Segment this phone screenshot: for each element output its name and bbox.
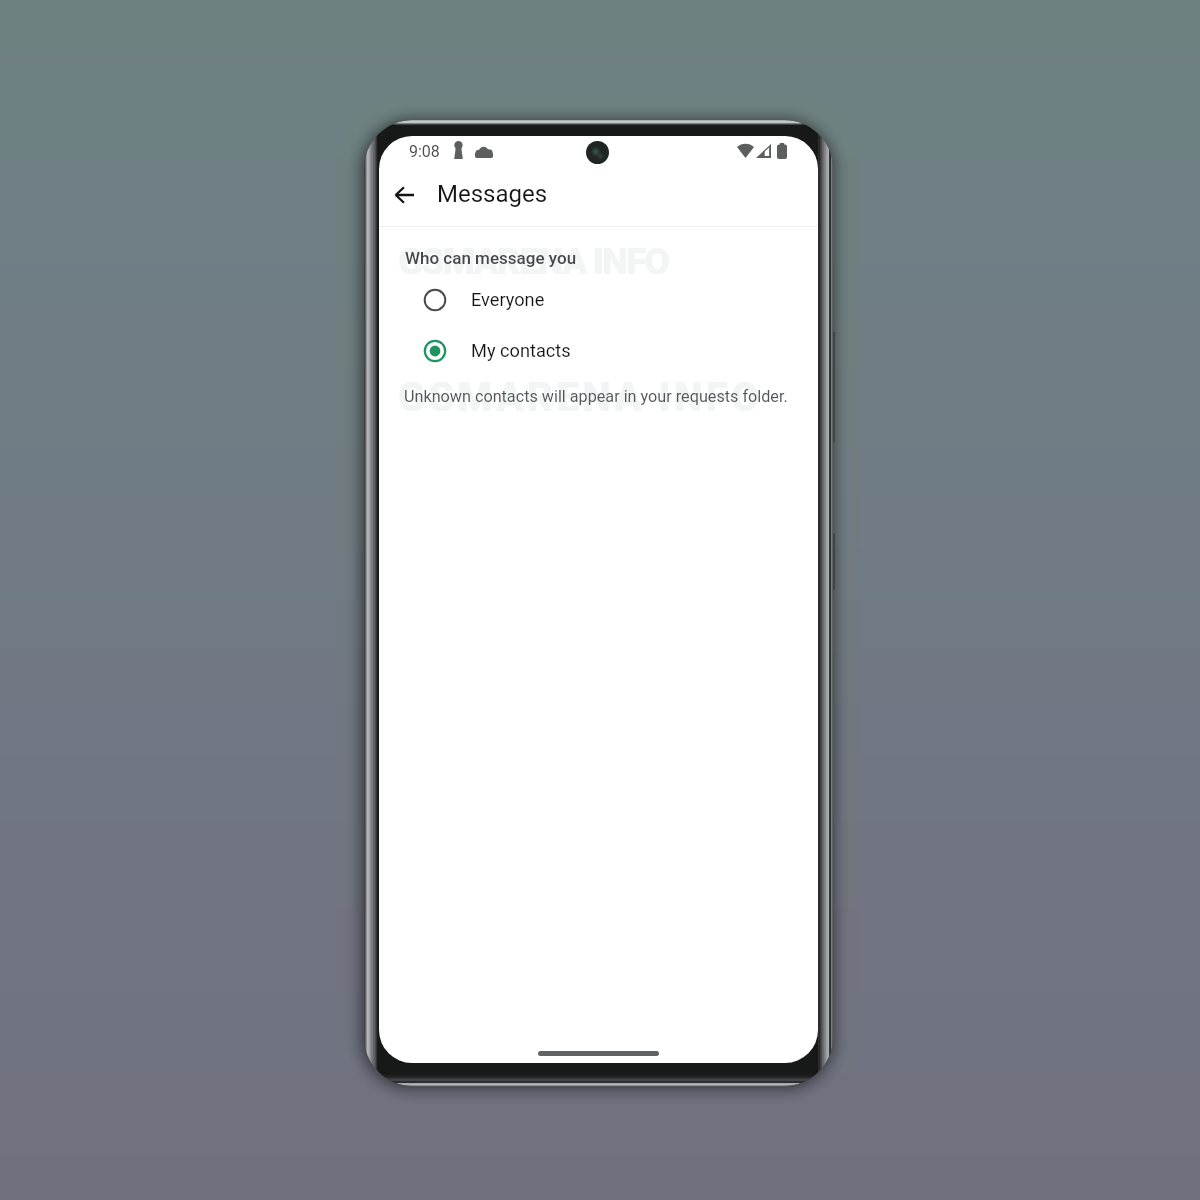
- staticText: My contacts: [471, 340, 571, 361]
- staticText: Everyone: [471, 289, 545, 310]
- staticText: Unknown contacts will appear in your req…: [404, 387, 788, 406]
- staticText: GSMARENA INFO: [398, 374, 763, 421]
- button[interactable]: My contacts: [379, 326, 818, 376]
- button[interactable]: Everyone: [379, 275, 818, 325]
- staticText: Who can message you: [405, 248, 577, 268]
- staticText: 9:08: [409, 142, 440, 161]
- button[interactable]: Back: [380, 171, 428, 219]
- staticText: Messages: [437, 180, 548, 208]
- staticText: GSMARENA INFO: [398, 240, 669, 283]
